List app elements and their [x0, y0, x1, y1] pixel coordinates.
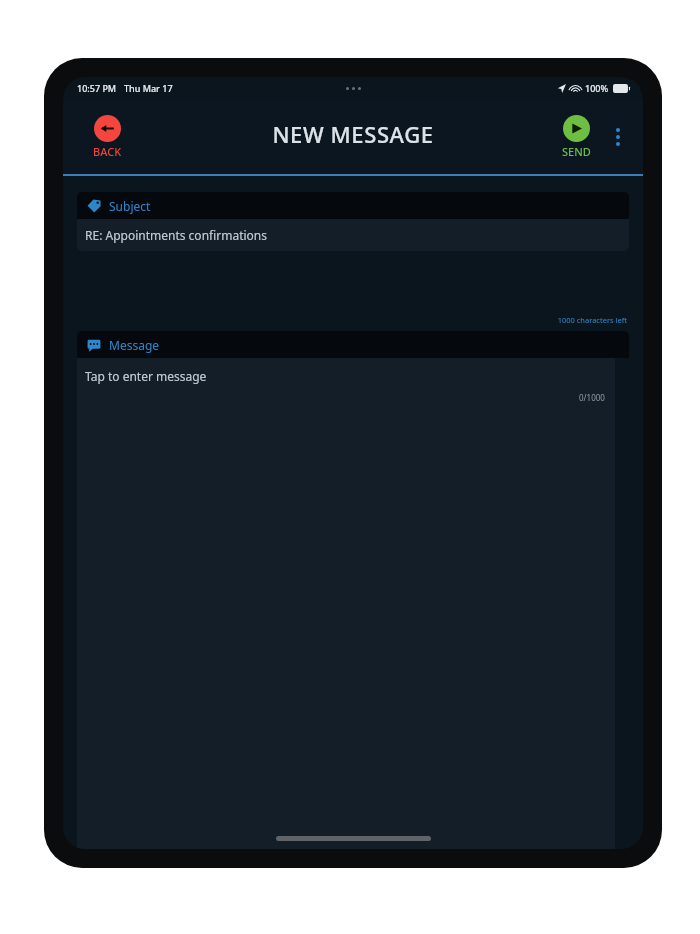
staticText: 1000 characters left	[63, 315, 627, 325]
button[interactable]: Tap to enter message	[77, 358, 615, 849]
button[interactable]: RE: Appointments confirmations	[77, 219, 629, 251]
staticText: 0/1000	[579, 392, 605, 403]
staticText: Subject	[109, 198, 151, 214]
staticText: 100%	[585, 82, 609, 94]
staticText: NEW MESSAGE	[272, 119, 434, 149]
staticText: BACK	[93, 144, 122, 159]
staticText: Thu Mar 17	[124, 82, 173, 94]
staticText: Tap to enter message	[85, 368, 207, 384]
staticText: 10:57 PM	[77, 82, 117, 94]
button[interactable]: BACK	[87, 111, 128, 163]
staticText: Message	[109, 337, 160, 353]
staticText: RE: Appointments confirmations	[85, 227, 268, 243]
button[interactable]: Subject	[77, 192, 629, 219]
button[interactable]: Message	[77, 331, 629, 358]
staticText: SEND	[562, 144, 591, 159]
button[interactable]: SEND	[556, 111, 597, 163]
button[interactable]: More options	[607, 120, 629, 154]
